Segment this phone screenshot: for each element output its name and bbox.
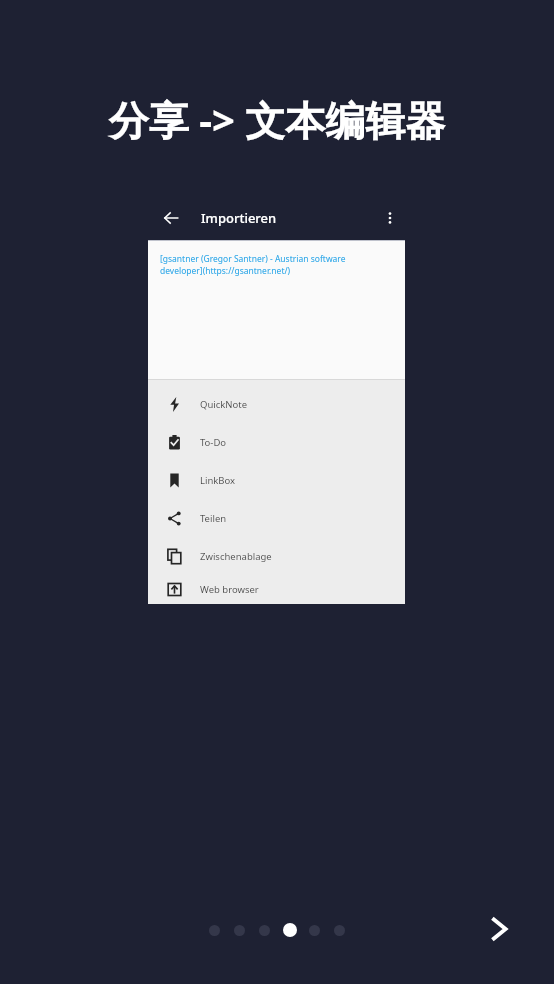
staticText: Importieren [201, 209, 277, 227]
button[interactable]: Back [157, 204, 185, 232]
staticText: Zwischenablage [200, 550, 272, 563]
button[interactable]: Web browser [148, 575, 405, 604]
staticText: 分享 -> 文本编辑器 [0, 92, 554, 147]
button[interactable]: To-Do [148, 423, 405, 461]
button[interactable]: Page 4 [277, 922, 302, 938]
button[interactable]: Page 2 [227, 922, 252, 938]
staticText: LinkBox [200, 474, 236, 487]
button[interactable]: Teilen [148, 499, 405, 537]
button[interactable]: Page 1 [202, 922, 227, 938]
button[interactable]: LinkBox [148, 461, 405, 499]
button[interactable]: More options [376, 204, 403, 231]
staticText: To-Do [200, 436, 227, 449]
button[interactable]: Page 5 [302, 922, 327, 938]
staticText: Web browser [200, 583, 259, 596]
staticText: QuickNote [200, 398, 248, 411]
button[interactable]: Zwischenablage [148, 537, 405, 575]
button[interactable]: Next [468, 898, 530, 960]
button[interactable]: Page 6 [327, 922, 352, 938]
button[interactable]: QuickNote [148, 385, 405, 423]
staticText: Teilen [200, 512, 227, 525]
button[interactable]: Page 3 [252, 922, 277, 938]
staticText: [gsantner (Gregor Santner) - Austrian so… [160, 253, 388, 277]
